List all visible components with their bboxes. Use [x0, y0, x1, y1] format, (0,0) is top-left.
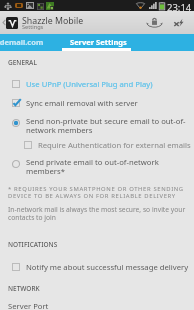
staticText: Sync email removal with server	[26, 98, 138, 108]
staticText: NOTIFICATIONS	[8, 240, 58, 249]
button[interactable]: Navigate up	[0, 11, 130, 34]
button[interactable]: Disable fast send	[167, 11, 190, 34]
staticText: 23:14	[167, 1, 192, 12]
staticText: In-network mail is always the most secur…	[8, 205, 186, 222]
staticText: Send non-private but secure email to out…	[26, 116, 186, 136]
staticText: Notify me about successful message deliv…	[26, 262, 189, 272]
staticText: * REQUIRES YOUR SMARTPHONE OR OTHER SEND…	[8, 185, 184, 200]
button[interactable]: Send non-private but secure email to out…	[0, 116, 194, 136]
button[interactable]: Notify me about successful message deliv…	[0, 261, 194, 273]
staticText: NETWORK	[8, 284, 40, 293]
staticText: Server Settings	[70, 37, 127, 47]
button[interactable]: Server Settings	[62, 34, 131, 51]
button[interactable]: Send private email to out-of-network mem…	[0, 157, 194, 177]
staticText: Require Authentication for external emai…	[38, 140, 191, 150]
button[interactable]: Sync email removal with server	[0, 97, 194, 109]
staticText: Use UPnP (Universal Plug and Play)	[26, 79, 153, 89]
button[interactable]: Use UPnP (Universal Plug and Play)	[0, 78, 194, 90]
staticText: @demail.com	[0, 37, 44, 47]
button[interactable]: @demail.com	[0, 34, 62, 51]
staticText: Server Port	[8, 301, 49, 310]
button[interactable]: Secure sync	[143, 11, 166, 34]
staticText: GENERAL	[8, 58, 37, 67]
staticText: Settings	[22, 23, 44, 31]
button[interactable]: Require Authentication for external emai…	[24, 139, 194, 150]
staticText: Shazzle Mobile	[22, 15, 84, 27]
staticText: Send private email to out-of-network mem…	[26, 157, 159, 177]
other: Navigate up	[2, 18, 6, 27]
